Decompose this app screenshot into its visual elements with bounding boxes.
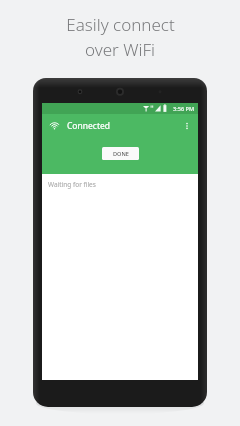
staticText: Connected <box>67 120 110 132</box>
staticText: 3:56 PM <box>173 105 195 113</box>
button[interactable]: More options <box>179 118 195 134</box>
staticText: Easily connect <box>66 13 175 36</box>
staticText: Waiting for files <box>48 180 96 189</box>
staticText: over WiFi <box>85 38 155 61</box>
button[interactable]: WiFi connected <box>47 118 62 133</box>
button[interactable]: DONE <box>102 147 139 160</box>
staticText: DONE <box>113 150 129 158</box>
